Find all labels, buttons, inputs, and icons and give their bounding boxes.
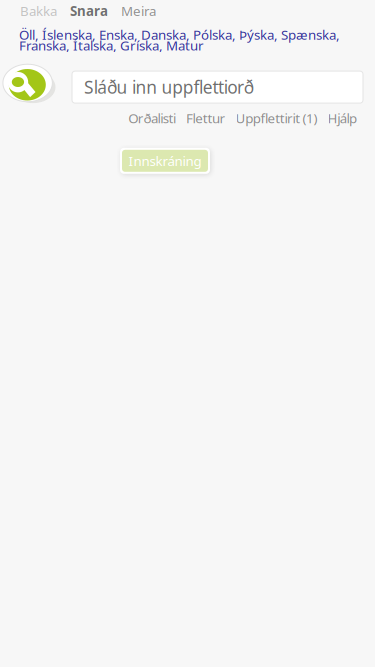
staticText: Bakka: [20, 2, 57, 20]
staticText: Hjálp: [328, 109, 357, 127]
staticText: Flettur: [186, 109, 226, 127]
staticText: Snara: [70, 2, 108, 20]
button[interactable]: Hjálp: [328, 109, 357, 127]
staticText: Öll, Íslenska, Enska, Danska, Pólska, Þý…: [19, 26, 340, 43]
button[interactable]: Snara: [70, 2, 108, 20]
button[interactable]: Bakka: [20, 2, 57, 20]
button[interactable]: Innskráning: [120, 148, 210, 174]
button[interactable]: Uppflettirit (1): [236, 109, 318, 127]
button[interactable]: Meira: [121, 2, 156, 20]
staticText: Uppflettirit (1): [236, 109, 318, 127]
staticText: Orðalisti: [128, 109, 176, 127]
staticText: Sláðu inn uppflettiorð: [84, 76, 254, 99]
button[interactable]: Franska, Ítalska, Gríska, Matur: [19, 36, 204, 54]
button[interactable]: Flettur: [186, 109, 226, 127]
button[interactable]: Orðalisti: [128, 109, 176, 127]
staticText: Meira: [121, 2, 156, 20]
button[interactable]: Öll, Íslenska, Enska, Danska, Pólska, Þý…: [19, 26, 340, 43]
staticText: Franska, Ítalska, Gríska, Matur: [19, 36, 204, 54]
button[interactable]: Sláðu inn uppflettiorð: [72, 71, 363, 103]
staticText: Innskráning: [128, 152, 201, 170]
